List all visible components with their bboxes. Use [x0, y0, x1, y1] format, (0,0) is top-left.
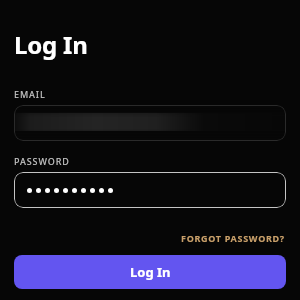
- staticText: FORGOT PASSWORD?: [181, 232, 285, 244]
- button[interactable]: Log In: [14, 255, 286, 289]
- staticText: Log In: [14, 28, 88, 61]
- button[interactable]: FORGOT PASSWORD?: [180, 230, 286, 246]
- staticText: EMAIL: [14, 88, 46, 100]
- button[interactable]: Email input: [14, 105, 286, 141]
- button[interactable]: Password input: [14, 172, 286, 208]
- staticText: Log In: [130, 263, 171, 281]
- staticText: PASSWORD: [14, 155, 70, 167]
